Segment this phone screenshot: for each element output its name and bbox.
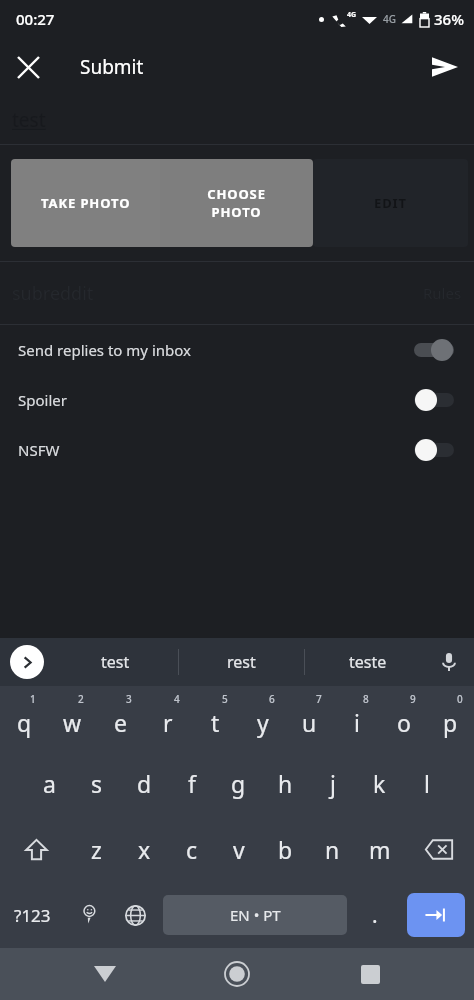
button[interactable]: k <box>356 751 403 816</box>
button[interactable]: f <box>168 751 215 816</box>
staticText: 7 <box>316 692 322 706</box>
staticText: 6 <box>269 692 275 706</box>
button[interactable]: 9 <box>380 686 427 751</box>
button[interactable]: teste <box>305 638 430 686</box>
staticText: t <box>211 707 220 738</box>
button[interactable]: Emoji and comma <box>65 882 112 948</box>
button[interactable]: Spoiler <box>0 375 474 425</box>
button[interactable]: m <box>356 816 403 882</box>
staticText: k <box>373 768 386 799</box>
button[interactable]: 4 <box>144 686 192 751</box>
staticText: 4G <box>383 12 396 26</box>
button[interactable]: 1 <box>0 686 48 751</box>
button[interactable]: 7 <box>286 686 333 751</box>
staticText: p <box>443 707 458 738</box>
staticText: a <box>43 768 56 799</box>
staticText: EN • PT <box>230 905 281 925</box>
staticText: 4 <box>174 692 180 706</box>
button[interactable]: g <box>215 751 262 816</box>
button[interactable]: s <box>73 751 121 816</box>
staticText: r <box>163 707 173 738</box>
button[interactable]: Voice input <box>432 645 466 679</box>
button[interactable]: 8 <box>333 686 380 751</box>
button[interactable]: Backspace <box>403 816 474 882</box>
button[interactable]: n <box>309 816 356 882</box>
staticText: NSFW <box>18 440 60 460</box>
staticText: c <box>186 834 198 865</box>
staticText: 5 <box>222 692 228 706</box>
button[interactable]: Close <box>0 39 56 95</box>
button[interactable]: 0 <box>427 686 474 751</box>
staticText: g <box>231 768 246 799</box>
button[interactable]: d <box>121 751 168 816</box>
staticText: 9 <box>410 692 416 706</box>
staticText: l <box>424 768 430 799</box>
button[interactable]: EN • PT <box>163 895 347 935</box>
button[interactable]: NSFW <box>0 425 474 475</box>
button[interactable]: 3 <box>96 686 144 751</box>
button[interactable]: ?123 <box>0 882 65 948</box>
staticText: s <box>91 768 103 799</box>
staticText: rest <box>227 651 256 673</box>
button[interactable]: rest <box>179 638 304 686</box>
staticText: j <box>330 768 336 799</box>
button[interactable]: b <box>262 816 309 882</box>
button[interactable]: Back <box>77 948 133 1000</box>
button[interactable]: 2 <box>48 686 96 751</box>
button[interactable]: x <box>120 816 168 882</box>
staticText: 3 <box>126 692 132 706</box>
staticText: h <box>278 768 293 799</box>
button[interactable]: z <box>72 816 120 882</box>
button[interactable]: TAKE PHOTO <box>11 159 160 247</box>
staticText: 8 <box>363 692 369 706</box>
staticText: v <box>233 834 245 865</box>
staticText: i <box>354 707 360 738</box>
staticText: EDIT <box>374 194 407 212</box>
staticText: f <box>188 768 196 799</box>
button[interactable]: Change language <box>112 882 159 948</box>
staticText: 00:27 <box>16 9 55 29</box>
staticText: Send replies to my inbox <box>18 340 191 360</box>
button[interactable]: c <box>168 816 215 882</box>
button[interactable]: 6 <box>239 686 286 751</box>
button[interactable]: Enter <box>407 893 465 937</box>
staticText: TAKE PHOTO <box>41 194 131 212</box>
staticText: 36% <box>434 9 464 29</box>
button[interactable]: Home <box>209 948 265 1000</box>
staticText: teste <box>349 651 387 673</box>
staticText: y <box>257 707 269 738</box>
button[interactable]: . <box>351 882 398 948</box>
staticText: . <box>372 901 378 930</box>
staticText: Submit <box>80 54 144 80</box>
staticText: n <box>325 834 340 865</box>
button[interactable]: More suggestions <box>10 645 44 679</box>
staticText: d <box>137 768 152 799</box>
button[interactable]: Send replies to my inbox <box>0 325 474 375</box>
staticText: 4G <box>347 10 357 20</box>
staticText: CHOOSE PHOTO <box>207 185 266 221</box>
button[interactable]: v <box>215 816 262 882</box>
button[interactable]: h <box>262 751 309 816</box>
button[interactable]: CHOOSE PHOTO <box>160 159 313 247</box>
button[interactable]: l <box>403 751 450 816</box>
button[interactable]: j <box>309 751 356 816</box>
button[interactable]: 5 <box>192 686 239 751</box>
staticText: test <box>101 651 130 673</box>
button[interactable]: a <box>25 751 73 816</box>
staticText: 0 <box>457 692 463 706</box>
staticText: ?123 <box>14 904 51 927</box>
staticText: m <box>369 834 391 865</box>
staticText: 2 <box>78 692 84 706</box>
button[interactable]: Recent apps <box>342 948 398 1000</box>
staticText: Spoiler <box>18 390 67 410</box>
button[interactable]: test <box>52 638 178 686</box>
staticText: z <box>91 834 102 865</box>
staticText: w <box>63 707 82 738</box>
staticText: o <box>397 707 411 738</box>
button[interactable]: Send <box>416 38 474 96</box>
button[interactable]: Shift <box>0 816 72 882</box>
